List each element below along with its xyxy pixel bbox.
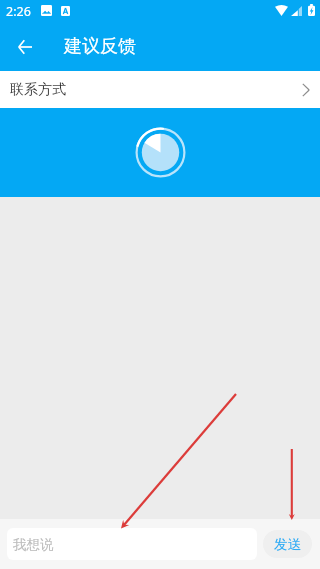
- staticText: 发送: [274, 536, 301, 553]
- button[interactable]: 联系方式: [0, 71, 320, 108]
- staticText: 联系方式: [10, 81, 66, 99]
- button[interactable]: 发送: [263, 530, 312, 558]
- button[interactable]: 我想说: [7, 528, 257, 560]
- staticText: 建议反馈: [64, 35, 136, 58]
- staticText: 2:26: [6, 3, 31, 20]
- button[interactable]: Back: [5, 28, 45, 68]
- staticText: 我想说: [13, 536, 54, 553]
